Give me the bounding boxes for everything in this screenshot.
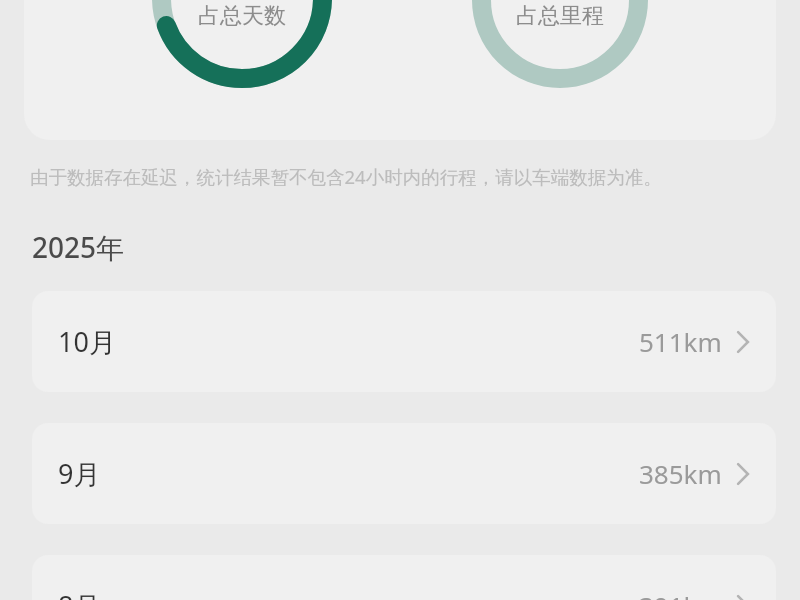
staticText: 占总天数	[198, 2, 286, 30]
staticText: 由于数据存在延迟，统计结果暂不包含24小时内的行程，请以车端数据为准。	[30, 164, 778, 189]
button[interactable]: 8月	[32, 555, 776, 600]
staticText: 10月	[58, 323, 116, 360]
staticText: 2025年	[32, 228, 125, 266]
staticText: 511km	[639, 324, 722, 359]
staticText: 385km	[639, 456, 722, 491]
button[interactable]: 10月	[32, 291, 776, 392]
staticText: 8月	[58, 587, 101, 600]
staticText: 391km	[639, 588, 722, 600]
button[interactable]: 9月	[32, 423, 776, 524]
staticText: 占总里程	[516, 2, 604, 30]
staticText: 9月	[58, 455, 101, 492]
